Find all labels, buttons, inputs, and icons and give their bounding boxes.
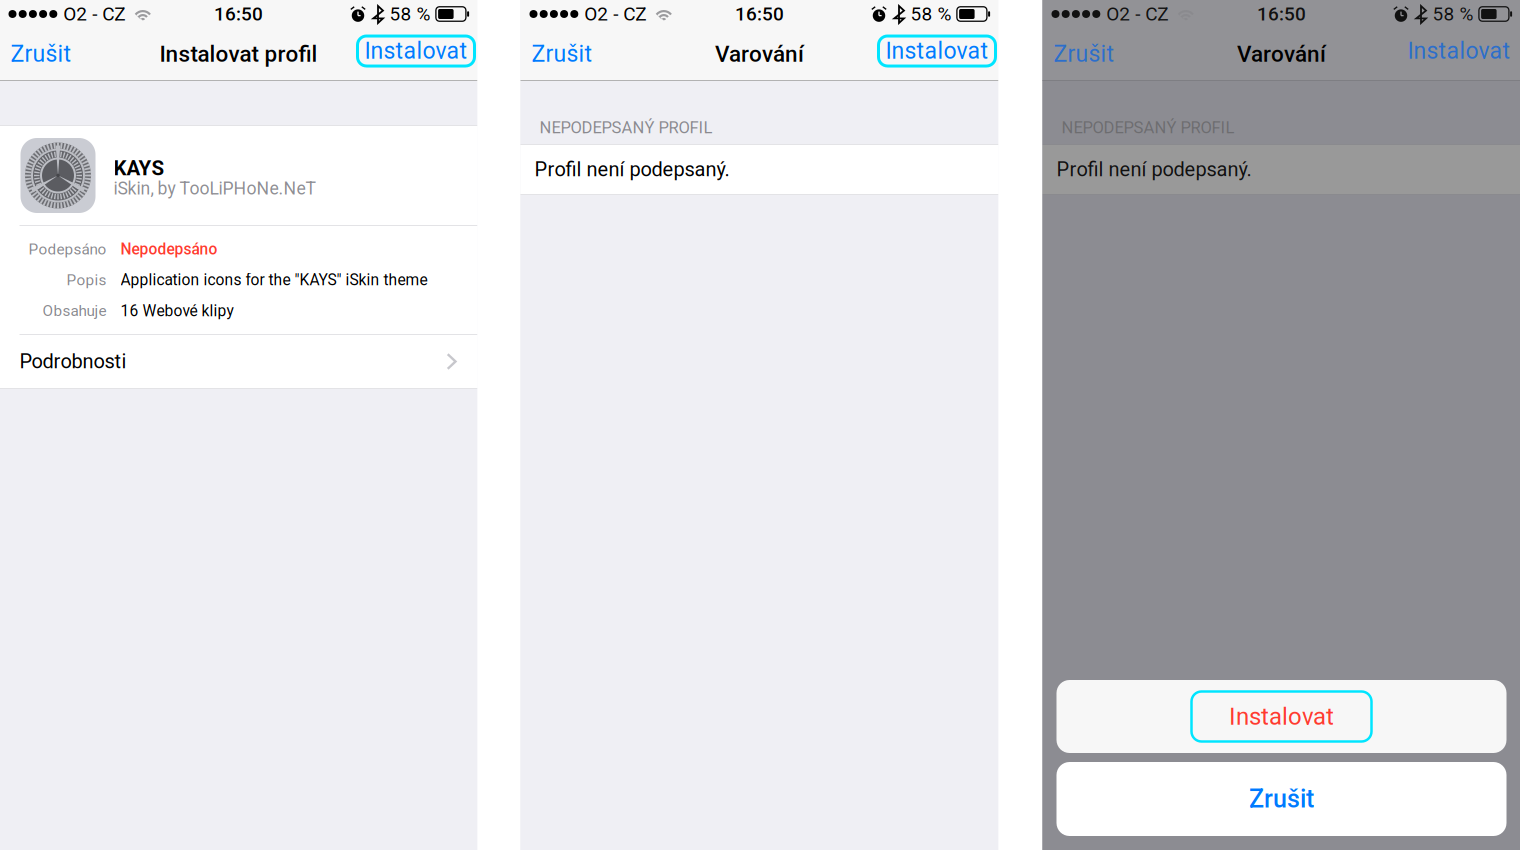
staticText: 16:50 (1257, 3, 1306, 25)
staticText: Varování (715, 41, 804, 67)
button[interactable]: Zrušit (1042, 31, 1122, 76)
staticText: Instalovat (1229, 702, 1334, 730)
staticText: Application icons for the "KAYS" iSkin t… (120, 271, 427, 289)
staticText: Podrobnosti (19, 350, 126, 373)
staticText: Instalovat profil (159, 41, 317, 67)
staticText: Zrušit (1053, 40, 1114, 67)
staticText: iSkin, by TooLiPHoNe.NeT (113, 178, 316, 199)
staticText: KAYS (113, 156, 164, 180)
staticText: Obsahuje (42, 302, 106, 320)
staticText: Zrušit (10, 40, 71, 67)
button[interactable]: Zrušit (1056, 762, 1506, 836)
staticText: Nepodepsáno (120, 240, 217, 258)
button[interactable]: Instalovat (878, 39, 998, 69)
staticText: Profil není podepsaný. (1056, 158, 1251, 181)
staticText: NEPODEPSANÝ PROFIL (539, 118, 712, 137)
staticText: Instalovat (885, 37, 988, 64)
staticText: NEPODEPSANÝ PROFIL (1061, 118, 1234, 137)
staticText: 16 Webové klipy (120, 302, 233, 320)
button[interactable]: Instalovat (357, 39, 477, 69)
staticText: O2 - CZ (584, 3, 646, 25)
staticText: 58 % (389, 3, 430, 25)
button[interactable]: Podrobnosti (0, 335, 477, 388)
staticText: Zrušit (531, 40, 592, 67)
staticText: O2 - CZ (63, 3, 125, 25)
button[interactable]: Instalovat (1056, 680, 1506, 753)
staticText: Instalovat (364, 37, 467, 64)
staticText: 58 % (1432, 3, 1473, 25)
staticText: 58 % (910, 3, 951, 25)
staticText: 16:50 (735, 3, 784, 25)
staticText: Zrušit (1249, 784, 1314, 814)
staticText: Instalovat (1407, 37, 1510, 64)
staticText: Varování (1237, 41, 1326, 67)
staticText: O2 - CZ (1106, 3, 1168, 25)
staticText: 16:50 (214, 3, 263, 25)
staticText: Podepsáno (28, 240, 106, 258)
button[interactable]: Instalovat (1400, 39, 1520, 69)
staticText: Profil není podepsaný. (534, 158, 729, 181)
button[interactable]: Zrušit (520, 31, 600, 76)
staticText: Popis (66, 271, 106, 289)
button[interactable]: Zrušit (0, 31, 79, 76)
